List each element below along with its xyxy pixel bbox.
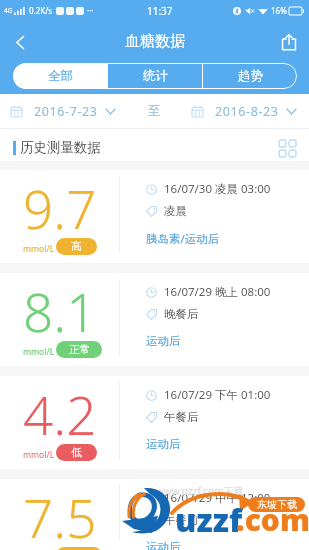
button[interactable]: 统计 xyxy=(108,63,202,89)
staticText: 7.5 xyxy=(23,481,97,550)
staticText: 4.2 xyxy=(23,378,97,450)
staticText: 8.1 xyxy=(23,275,97,347)
staticText: 胰岛素/运动后 xyxy=(146,231,220,247)
staticText: 午餐前 xyxy=(164,513,199,527)
button[interactable]: 7.5 xyxy=(0,479,309,550)
button[interactable]: Back xyxy=(0,22,40,62)
button[interactable]: 2016-8-23 xyxy=(190,98,298,125)
staticText: 晚餐后 xyxy=(164,307,199,321)
staticText: 低 xyxy=(71,446,82,459)
staticText: 16/07/29 下午 01:00 xyxy=(164,387,271,403)
button[interactable]: 4.2 xyxy=(0,376,309,469)
staticText: 凌晨 xyxy=(164,204,187,218)
staticText: 午餐后 xyxy=(164,410,199,424)
staticText: .com xyxy=(236,499,309,540)
button[interactable]: Grid view xyxy=(275,136,299,160)
button[interactable]: 9.7 xyxy=(0,170,309,263)
staticText: 历史测量数据 xyxy=(20,139,101,156)
staticText: 2016-8-23 xyxy=(215,103,279,120)
button[interactable]: Share xyxy=(269,22,309,62)
staticText: mmol/L xyxy=(23,449,55,461)
staticText: 正常 xyxy=(69,343,90,356)
staticText: 全部 xyxy=(48,68,73,84)
staticText: 2016-7-23 xyxy=(34,103,98,120)
staticText: 血糖数据 xyxy=(125,32,185,51)
staticText: 高 xyxy=(71,240,82,253)
button[interactable]: 趋势 xyxy=(203,63,297,89)
staticText: 16/07/30 凌晨 03:00 xyxy=(164,181,271,197)
staticText: 16/07/29 中午 12:00 xyxy=(164,490,271,506)
staticText: 至 xyxy=(148,103,161,119)
staticText: mmol/L xyxy=(23,243,55,255)
staticText: 东坡下载 xyxy=(257,498,297,511)
staticText: 0.2K/s xyxy=(29,5,53,16)
button[interactable]: 2016-7-23 xyxy=(9,98,117,125)
staticText: 统计 xyxy=(143,68,168,84)
staticText: ··· xyxy=(87,5,94,16)
staticText: 11:37 xyxy=(147,4,173,18)
button[interactable]: 8.1 xyxy=(0,273,309,366)
staticText: 16/07/29 晚上 08:00 xyxy=(164,284,271,300)
button[interactable]: 全部 xyxy=(13,63,107,89)
staticText: uzzf xyxy=(175,498,243,542)
staticText: 运动后 xyxy=(146,437,181,451)
staticText: 16% xyxy=(271,5,287,16)
staticText: 趋势 xyxy=(238,68,263,84)
staticText: 运动后 xyxy=(146,540,181,550)
staticText: mmol/L xyxy=(23,346,55,358)
staticText: 9.7 xyxy=(23,172,97,244)
staticText: 4G xyxy=(4,6,13,15)
staticText: 运动后 xyxy=(146,334,181,348)
staticText: www.uzzf.com下载 xyxy=(156,484,244,498)
